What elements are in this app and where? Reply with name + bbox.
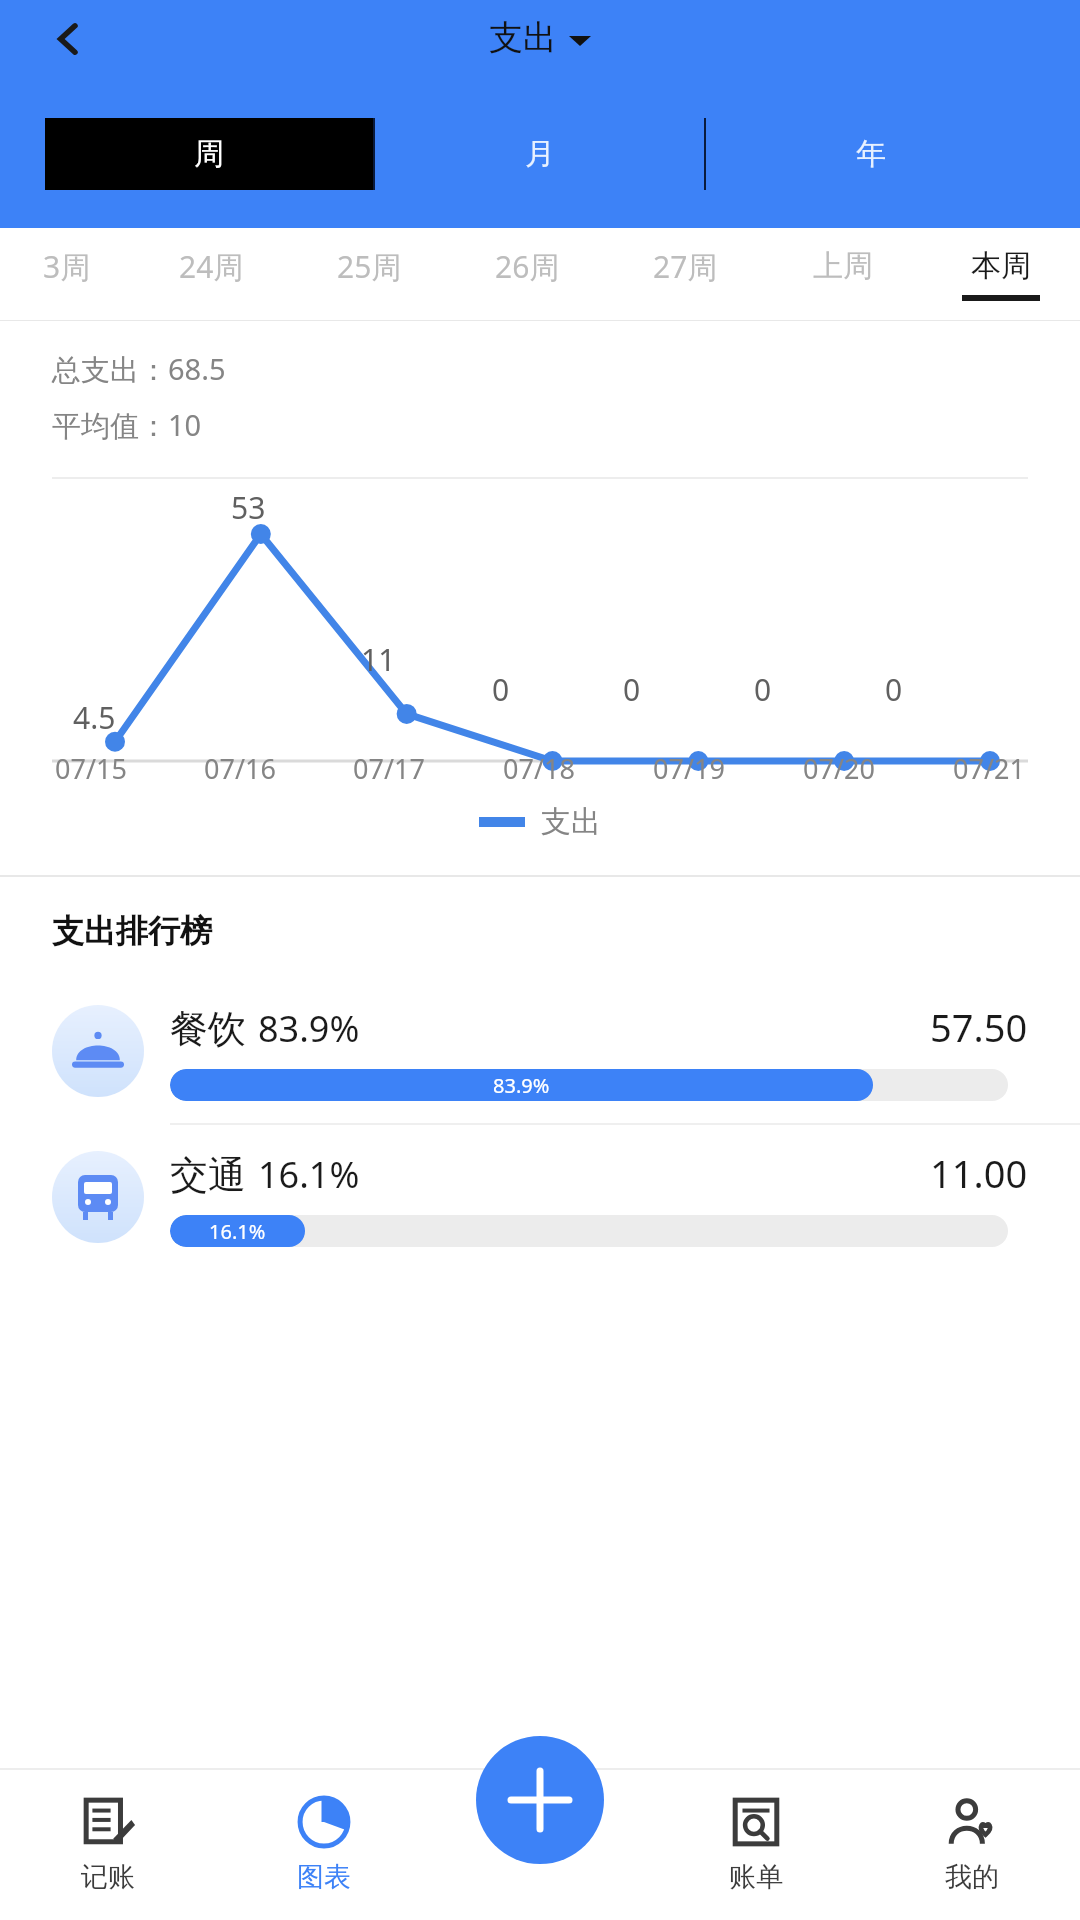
button[interactable]: 图表: [216, 1770, 432, 1920]
staticText: 11.00: [930, 1147, 1028, 1199]
staticText: 83.9%: [258, 1004, 360, 1053]
staticText: 11: [361, 639, 396, 680]
staticText: 26周: [495, 246, 560, 287]
button[interactable]: 3周: [0, 228, 133, 320]
staticText: 07/19: [653, 750, 725, 787]
staticText: 0: [754, 669, 772, 710]
staticText: 83.9%: [493, 1072, 550, 1099]
button[interactable]: 支出: [489, 16, 591, 59]
staticText: 记账: [81, 1860, 135, 1894]
staticText: 支出: [541, 803, 601, 841]
button[interactable]: 月: [375, 118, 704, 190]
button[interactable]: 记账: [0, 1770, 216, 1920]
staticText: 我的: [945, 1860, 999, 1894]
button[interactable]: 24周: [133, 228, 290, 320]
staticText: 平均值：10: [52, 405, 202, 445]
staticText: 0: [885, 669, 903, 710]
staticText: 上周: [813, 247, 873, 285]
staticText: 07/20: [803, 750, 875, 787]
staticText: 07/17: [353, 750, 425, 787]
button[interactable]: 本周: [922, 228, 1080, 320]
staticText: 年: [856, 135, 886, 173]
button[interactable]: Back: [38, 8, 100, 70]
staticText: 07/16: [204, 750, 276, 787]
staticText: 24周: [179, 246, 244, 287]
button[interactable]: 27周: [606, 228, 764, 320]
staticText: 图表: [297, 1860, 351, 1894]
button[interactable]: 上周: [764, 228, 922, 320]
staticText: 53: [231, 487, 266, 528]
staticText: 周: [194, 135, 224, 173]
staticText: 07/15: [55, 750, 127, 787]
staticText: 0: [623, 669, 641, 710]
staticText: 月: [525, 135, 555, 173]
button[interactable]: 年: [706, 118, 1035, 190]
staticText: 16.1%: [209, 1218, 266, 1245]
staticText: 餐饮: [170, 1005, 246, 1053]
staticText: 支出: [489, 16, 557, 59]
button[interactable]: 记一笔 Add: [476, 1736, 604, 1864]
button[interactable]: 我的: [864, 1770, 1080, 1920]
button[interactable]: 25周: [290, 228, 448, 320]
staticText: 25周: [337, 246, 402, 287]
staticText: 账单: [729, 1860, 783, 1894]
button[interactable]: 交通: [0, 1125, 1080, 1269]
staticText: 07/21: [953, 750, 1025, 787]
staticText: 3周: [43, 246, 91, 287]
staticText: 57.50: [930, 1001, 1028, 1053]
staticText: 16.1%: [258, 1150, 360, 1199]
staticText: 27周: [653, 246, 718, 287]
button[interactable]: 餐饮: [0, 979, 1080, 1123]
button[interactable]: 账单: [648, 1770, 864, 1920]
button[interactable]: 26周: [448, 228, 606, 320]
staticText: 记一笔: [500, 1819, 581, 1853]
staticText: 07/18: [503, 750, 575, 787]
button[interactable]: 周: [45, 118, 373, 190]
staticText: 交通: [170, 1151, 246, 1199]
staticText: 4.5: [73, 697, 116, 738]
staticText: 本周: [971, 247, 1031, 285]
staticText: 总支出：68.5: [52, 349, 226, 389]
staticText: 0: [492, 669, 510, 710]
staticText: 支出排行榜: [52, 911, 212, 951]
